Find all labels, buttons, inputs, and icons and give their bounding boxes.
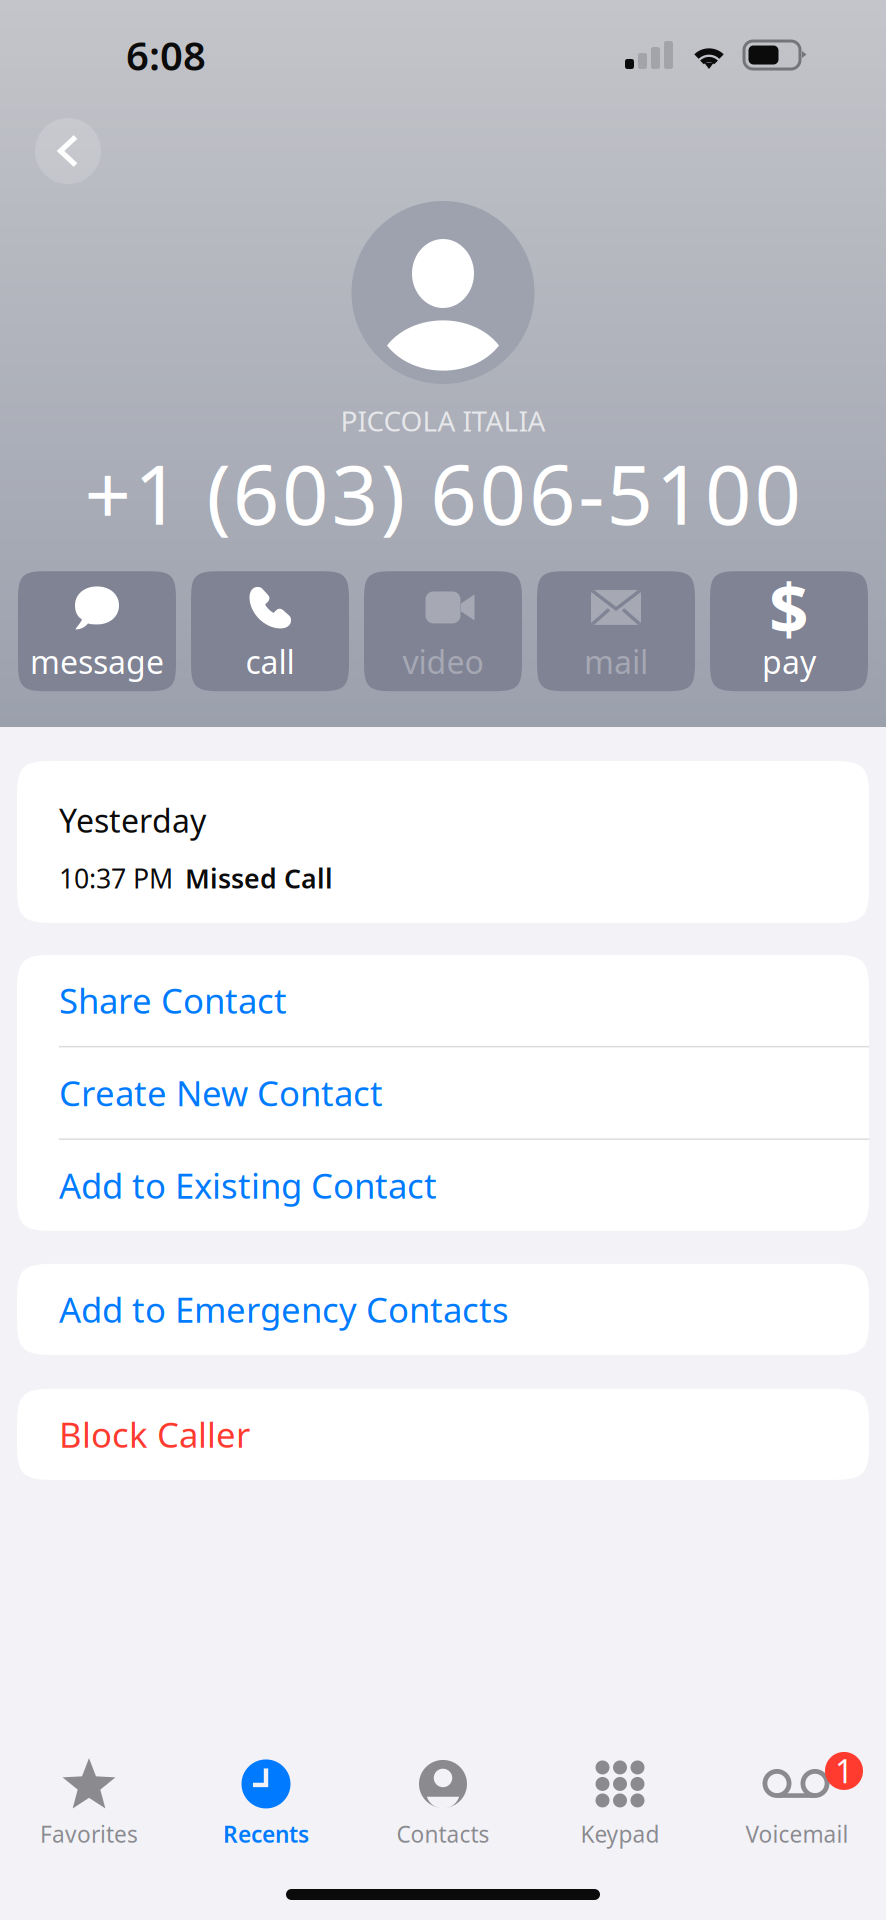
- staticText: Recents: [223, 1819, 309, 1849]
- staticText: Add to Emergency Contacts: [59, 1286, 509, 1332]
- button[interactable]: Favorites: [0, 1754, 177, 1854]
- button[interactable]: $: [710, 571, 868, 691]
- staticText: Favorites: [40, 1819, 138, 1849]
- staticText: Yesterday: [59, 799, 206, 841]
- button[interactable]: call: [191, 571, 349, 691]
- staticText: PICCOLA ITALIA: [340, 402, 545, 439]
- button[interactable]: Block Caller: [17, 1389, 869, 1480]
- button[interactable]: Add to Emergency Contacts: [17, 1264, 869, 1355]
- staticText: Create New Contact: [59, 1070, 383, 1116]
- staticText: pay: [762, 640, 816, 683]
- staticText: Share Contact: [59, 977, 287, 1023]
- button[interactable]: Contacts: [354, 1754, 531, 1854]
- button[interactable]: Keypad: [531, 1754, 708, 1854]
- button[interactable]: Share Contact: [17, 955, 869, 1046]
- staticText: Voicemail: [745, 1819, 848, 1849]
- staticText: 10:37 PM: [59, 860, 173, 896]
- staticText: video: [402, 640, 483, 683]
- staticText: Keypad: [580, 1819, 659, 1849]
- staticText: 1: [835, 1750, 853, 1792]
- staticText: message: [30, 640, 164, 683]
- staticText: mail: [584, 640, 648, 683]
- staticText: $: [769, 561, 809, 653]
- button[interactable]: video: [364, 571, 522, 691]
- staticText: Add to Existing Contact: [59, 1162, 437, 1208]
- staticText: Contacts: [396, 1819, 489, 1849]
- button[interactable]: message: [18, 571, 176, 691]
- staticText: Block Caller: [59, 1411, 250, 1457]
- button[interactable]: mail: [537, 571, 695, 691]
- staticText: 6:08: [126, 28, 206, 81]
- button[interactable]: Add to Existing Contact: [17, 1140, 869, 1231]
- button[interactable]: Create New Contact: [17, 1047, 869, 1138]
- button[interactable]: Recents: [177, 1754, 354, 1854]
- staticText: Missed Call: [185, 860, 333, 896]
- button[interactable]: Back: [26, 109, 110, 193]
- staticText: +1 (603) 606-5100: [85, 439, 801, 547]
- button[interactable]: 1: [708, 1754, 885, 1854]
- staticText: call: [245, 640, 294, 683]
